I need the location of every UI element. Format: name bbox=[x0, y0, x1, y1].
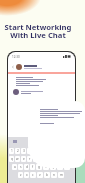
button[interactable]: n bbox=[51, 172, 57, 178]
staticText: d bbox=[26, 165, 28, 169]
button[interactable]: w bbox=[15, 156, 20, 162]
staticText: s bbox=[20, 165, 22, 169]
staticText: j bbox=[53, 165, 54, 169]
button[interactable]: m bbox=[58, 172, 64, 178]
staticText: e bbox=[23, 157, 25, 161]
staticText: 2 bbox=[17, 149, 19, 153]
staticText: Start Networking With Live Chat bbox=[0, 22, 76, 40]
button[interactable]: 2 bbox=[15, 148, 20, 154]
staticText: f bbox=[32, 165, 34, 169]
button[interactable]: r bbox=[27, 156, 32, 162]
button[interactable]: c bbox=[30, 172, 36, 178]
staticText: b bbox=[46, 173, 48, 177]
staticText: h bbox=[45, 165, 47, 169]
button[interactable]: 3 bbox=[21, 148, 26, 154]
staticText: q bbox=[11, 157, 13, 161]
staticText: r bbox=[29, 157, 31, 161]
staticText: x bbox=[26, 173, 28, 177]
staticText: a bbox=[14, 165, 16, 169]
staticText: 3 bbox=[23, 149, 25, 153]
staticText: 1 bbox=[11, 149, 13, 153]
button[interactable]: x bbox=[24, 172, 29, 178]
staticText: v bbox=[39, 173, 41, 177]
staticText: g bbox=[38, 165, 40, 169]
button[interactable]: q bbox=[9, 156, 14, 162]
staticText: 12:30 bbox=[12, 55, 20, 59]
button[interactable]: h bbox=[43, 164, 49, 170]
staticText: w bbox=[16, 157, 19, 161]
staticText: z bbox=[20, 173, 22, 177]
button[interactable]: s bbox=[18, 164, 23, 170]
button[interactable]: g bbox=[36, 164, 42, 170]
button[interactable]: f bbox=[30, 164, 35, 170]
staticText: m bbox=[60, 173, 63, 177]
staticText: c bbox=[32, 173, 34, 177]
button[interactable]: e bbox=[21, 156, 26, 162]
button[interactable]: Back bbox=[11, 65, 15, 69]
staticText: n bbox=[53, 173, 55, 177]
button[interactable]: z bbox=[18, 172, 23, 178]
button[interactable]: v bbox=[37, 172, 43, 178]
button[interactable]: j bbox=[50, 164, 56, 170]
button[interactable]: 1 bbox=[9, 148, 14, 154]
button[interactable]: b bbox=[44, 172, 50, 178]
button[interactable]: a bbox=[12, 164, 17, 170]
button[interactable]: d bbox=[24, 164, 29, 170]
